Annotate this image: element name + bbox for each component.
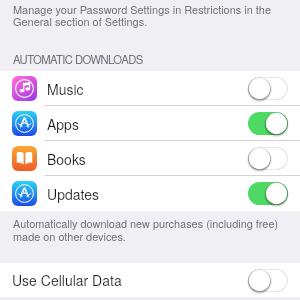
button[interactable]: Toggle on	[248, 112, 288, 135]
staticText: Apps	[47, 114, 79, 134]
button[interactable]: Music	[0, 71, 300, 106]
staticText: Updates	[47, 184, 99, 204]
staticText: AUTOMATIC DOWNLOADS	[13, 51, 143, 67]
button[interactable]: Toggle on	[248, 182, 288, 205]
button[interactable]: Toggle off	[248, 269, 288, 292]
staticText: Books	[47, 149, 86, 169]
button[interactable]: Books	[0, 141, 300, 176]
staticText: Automatically download new purchases (in…	[13, 215, 288, 244]
button[interactable]: Apps	[0, 106, 300, 141]
staticText: Use Cellular Data	[12, 270, 122, 290]
staticText: Manage your Password Settings in Restric…	[13, 1, 278, 29]
button[interactable]: Toggle off	[248, 147, 288, 170]
button[interactable]: Updates	[0, 176, 300, 211]
button[interactable]: Toggle off	[248, 77, 288, 100]
staticText: Music	[47, 79, 84, 99]
button[interactable]: Use Cellular Data	[0, 263, 300, 297]
